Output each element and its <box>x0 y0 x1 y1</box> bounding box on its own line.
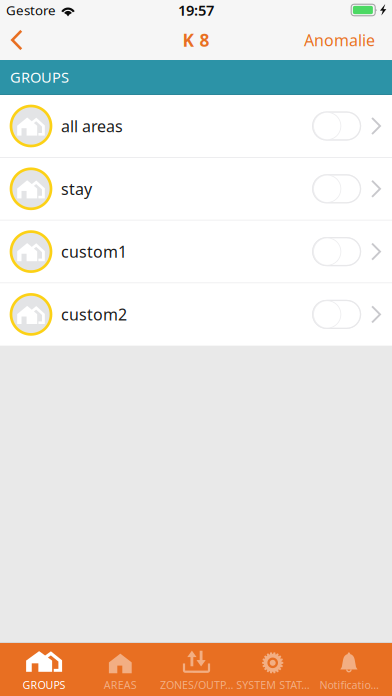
button[interactable]: custom2 <box>0 283 392 345</box>
staticText: ZONES/OUTP… <box>160 678 233 692</box>
staticText: K 8 <box>182 28 209 51</box>
staticText: custom2 <box>61 304 127 325</box>
staticText: GROUPS <box>10 67 69 87</box>
button[interactable]: stay <box>0 158 392 220</box>
button[interactable]: SYSTEM STAT… <box>235 643 311 696</box>
button[interactable]: Anomalie <box>292 20 392 60</box>
button[interactable]: Notificatio… <box>311 643 387 696</box>
button[interactable]: all areas <box>0 95 392 157</box>
staticText: 19:57 <box>178 0 214 20</box>
button[interactable]: GROUPS <box>6 643 82 696</box>
button[interactable]: custom1 <box>0 221 392 283</box>
staticText: stay <box>61 178 92 199</box>
staticText: AREAS <box>104 678 137 692</box>
button[interactable]: AREAS <box>82 643 158 696</box>
button[interactable]: ZONES/OUTP… <box>158 643 235 696</box>
button[interactable]: Back <box>0 20 40 59</box>
staticText: Gestore <box>6 1 56 19</box>
staticText: custom1 <box>61 241 127 262</box>
staticText: Notificatio… <box>319 678 378 692</box>
staticText: Anomalie <box>304 29 375 51</box>
staticText: GROUPS <box>23 678 66 692</box>
staticText: SYSTEM STAT… <box>236 678 309 692</box>
staticText: all areas <box>61 115 123 137</box>
